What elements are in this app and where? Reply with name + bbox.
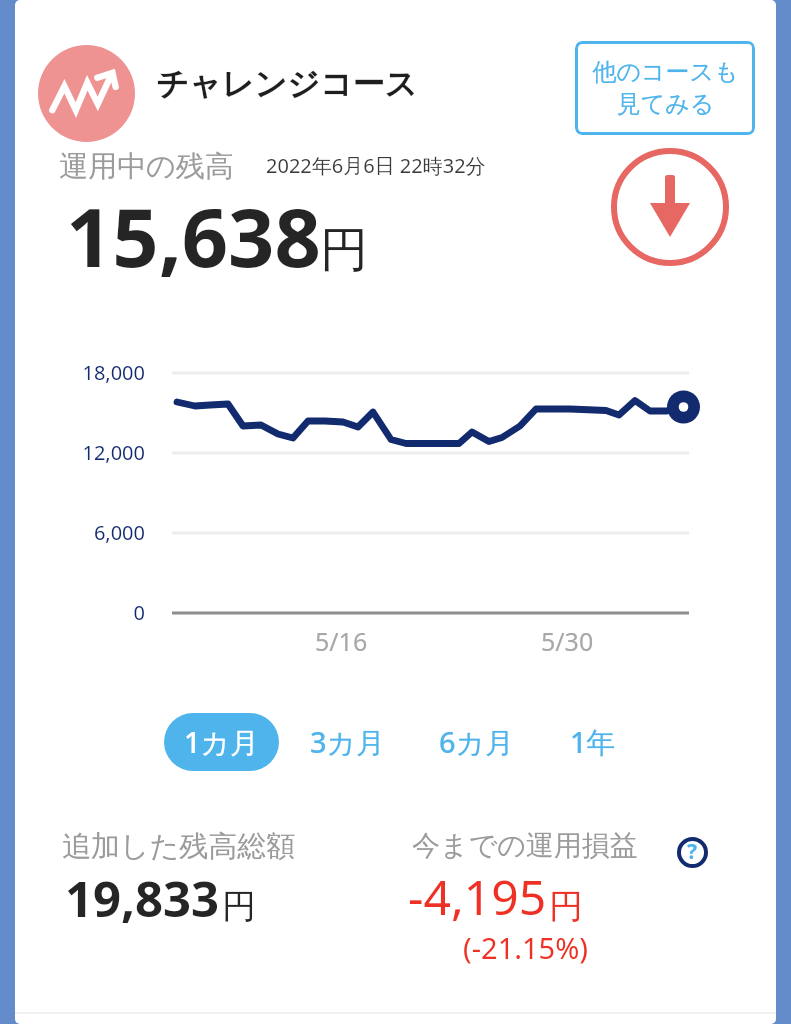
- staticText: 1カ月: [184, 722, 260, 762]
- staticText: 円: [549, 885, 583, 928]
- button[interactable]: Help: [677, 837, 708, 868]
- staticText: 円: [320, 220, 368, 280]
- staticText: 5/16: [315, 624, 368, 658]
- staticText: 2022年6月6日 22時32分: [266, 152, 486, 179]
- button[interactable]: 6カ月: [419, 713, 534, 771]
- staticText: 18,000: [15, 359, 145, 386]
- button[interactable]: 他のコースも 見てみる: [575, 41, 755, 135]
- staticText: (-21.15%): [463, 928, 588, 967]
- staticText: 12,000: [15, 439, 145, 466]
- staticText: 運用中の残高: [59, 148, 234, 185]
- button[interactable]: Deposit: [611, 148, 729, 266]
- staticText: 6,000: [15, 519, 145, 546]
- staticText: 19,833: [65, 865, 220, 932]
- staticText: 追加した残高総額: [62, 828, 296, 865]
- staticText: 5/30: [541, 624, 594, 658]
- staticText: 今までの運用損益: [412, 828, 638, 863]
- button[interactable]: 1カ月: [164, 713, 279, 771]
- staticText: ?: [687, 837, 698, 866]
- staticText: -4,195: [408, 864, 547, 929]
- staticText: 6カ月: [439, 722, 515, 762]
- staticText: 円: [222, 885, 256, 928]
- staticText: 3カ月: [310, 722, 386, 762]
- button[interactable]: 3カ月: [290, 713, 405, 771]
- button[interactable]: 1年: [535, 713, 650, 771]
- staticText: 他のコースも 見てみる: [592, 57, 739, 119]
- staticText: 15,638: [66, 180, 321, 290]
- staticText: チャレンジコース: [156, 64, 418, 104]
- staticText: 0: [15, 599, 145, 626]
- staticText: 1年: [570, 722, 616, 762]
